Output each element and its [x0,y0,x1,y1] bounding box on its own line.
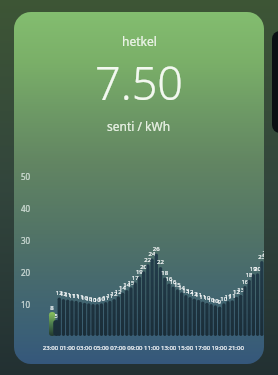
button[interactable]: hetkel [14,12,264,364]
staticText: 7.50 [95,52,184,113]
staticText: hetkel [122,33,157,49]
staticText: senti / kWh [107,118,171,134]
